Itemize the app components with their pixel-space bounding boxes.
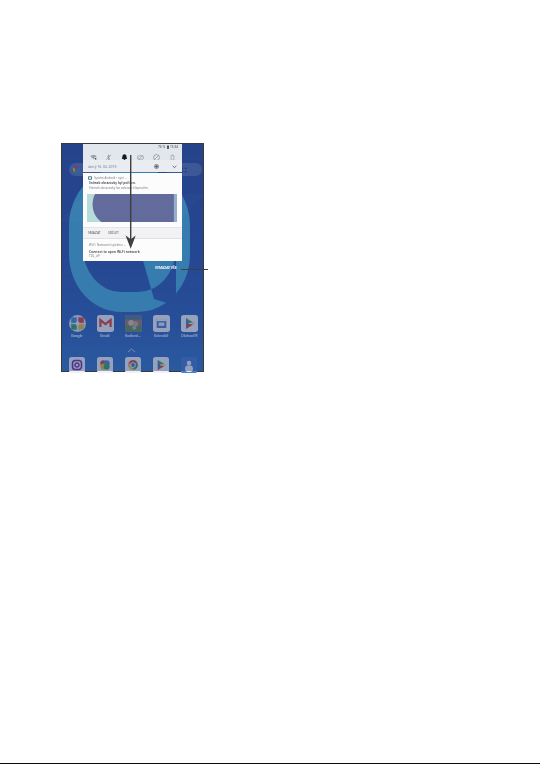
staticText: Kalendář (154, 333, 169, 338)
staticText: Connect to open Wi-Fi network (89, 249, 140, 253)
button[interactable]: Photos (92, 357, 118, 373)
staticText: Google (71, 333, 83, 338)
staticText: SMAZAT (88, 230, 101, 234)
button[interactable]: VYMAZAT VŠE (155, 265, 177, 270)
staticText: úterý 16. 04. 2019 (88, 164, 117, 169)
button[interactable]: Auto rotate (150, 151, 162, 163)
staticText: Systém Android • nyní ⌄ (94, 176, 127, 180)
staticText: SDÍLET (108, 230, 119, 234)
staticText: Wi-Fi Nastavení systému ⌄ (89, 243, 126, 247)
staticText: VYMAZAT VŠE (155, 265, 177, 270)
button[interactable]: Play Store (148, 357, 174, 373)
staticText: Gmail (100, 333, 110, 338)
button[interactable]: Instagram (64, 357, 90, 373)
button[interactable]: Calendar (148, 315, 174, 338)
staticText: Obchod Pl (181, 333, 198, 338)
staticText: Rodinné... (125, 333, 141, 338)
button[interactable]: Google (64, 315, 90, 338)
staticText: Snímek obrazovky byl pořízen. (89, 181, 136, 185)
button[interactable]: Chrome (120, 357, 146, 373)
button[interactable]: Play Store (176, 315, 202, 338)
button[interactable]: SDÍLET (107, 228, 120, 236)
button[interactable]: Do not disturb (118, 151, 130, 163)
button[interactable]: All apps (166, 163, 202, 176)
staticText: Snímek obrazovky lze zobrazit klepnutím. (89, 186, 149, 190)
button[interactable]: Flashlight (134, 151, 146, 163)
button[interactable]: SMAZAT (87, 228, 102, 236)
button[interactable]: Expand quick settings (170, 162, 179, 171)
button[interactable]: Bluetooth (102, 151, 114, 163)
staticText: 76 % (158, 145, 166, 149)
staticText: TDL_viP (89, 254, 101, 258)
button[interactable]: Settings (152, 162, 161, 171)
staticText: 15:34 (170, 145, 179, 149)
button[interactable]: Wi-Fi (87, 151, 99, 163)
button[interactable]: Search (69, 163, 133, 176)
button[interactable]: Gmail (92, 315, 118, 338)
button[interactable]: Battery saver (166, 151, 178, 163)
button[interactable]: Photos (120, 315, 146, 338)
button[interactable]: Contacts (176, 357, 202, 373)
